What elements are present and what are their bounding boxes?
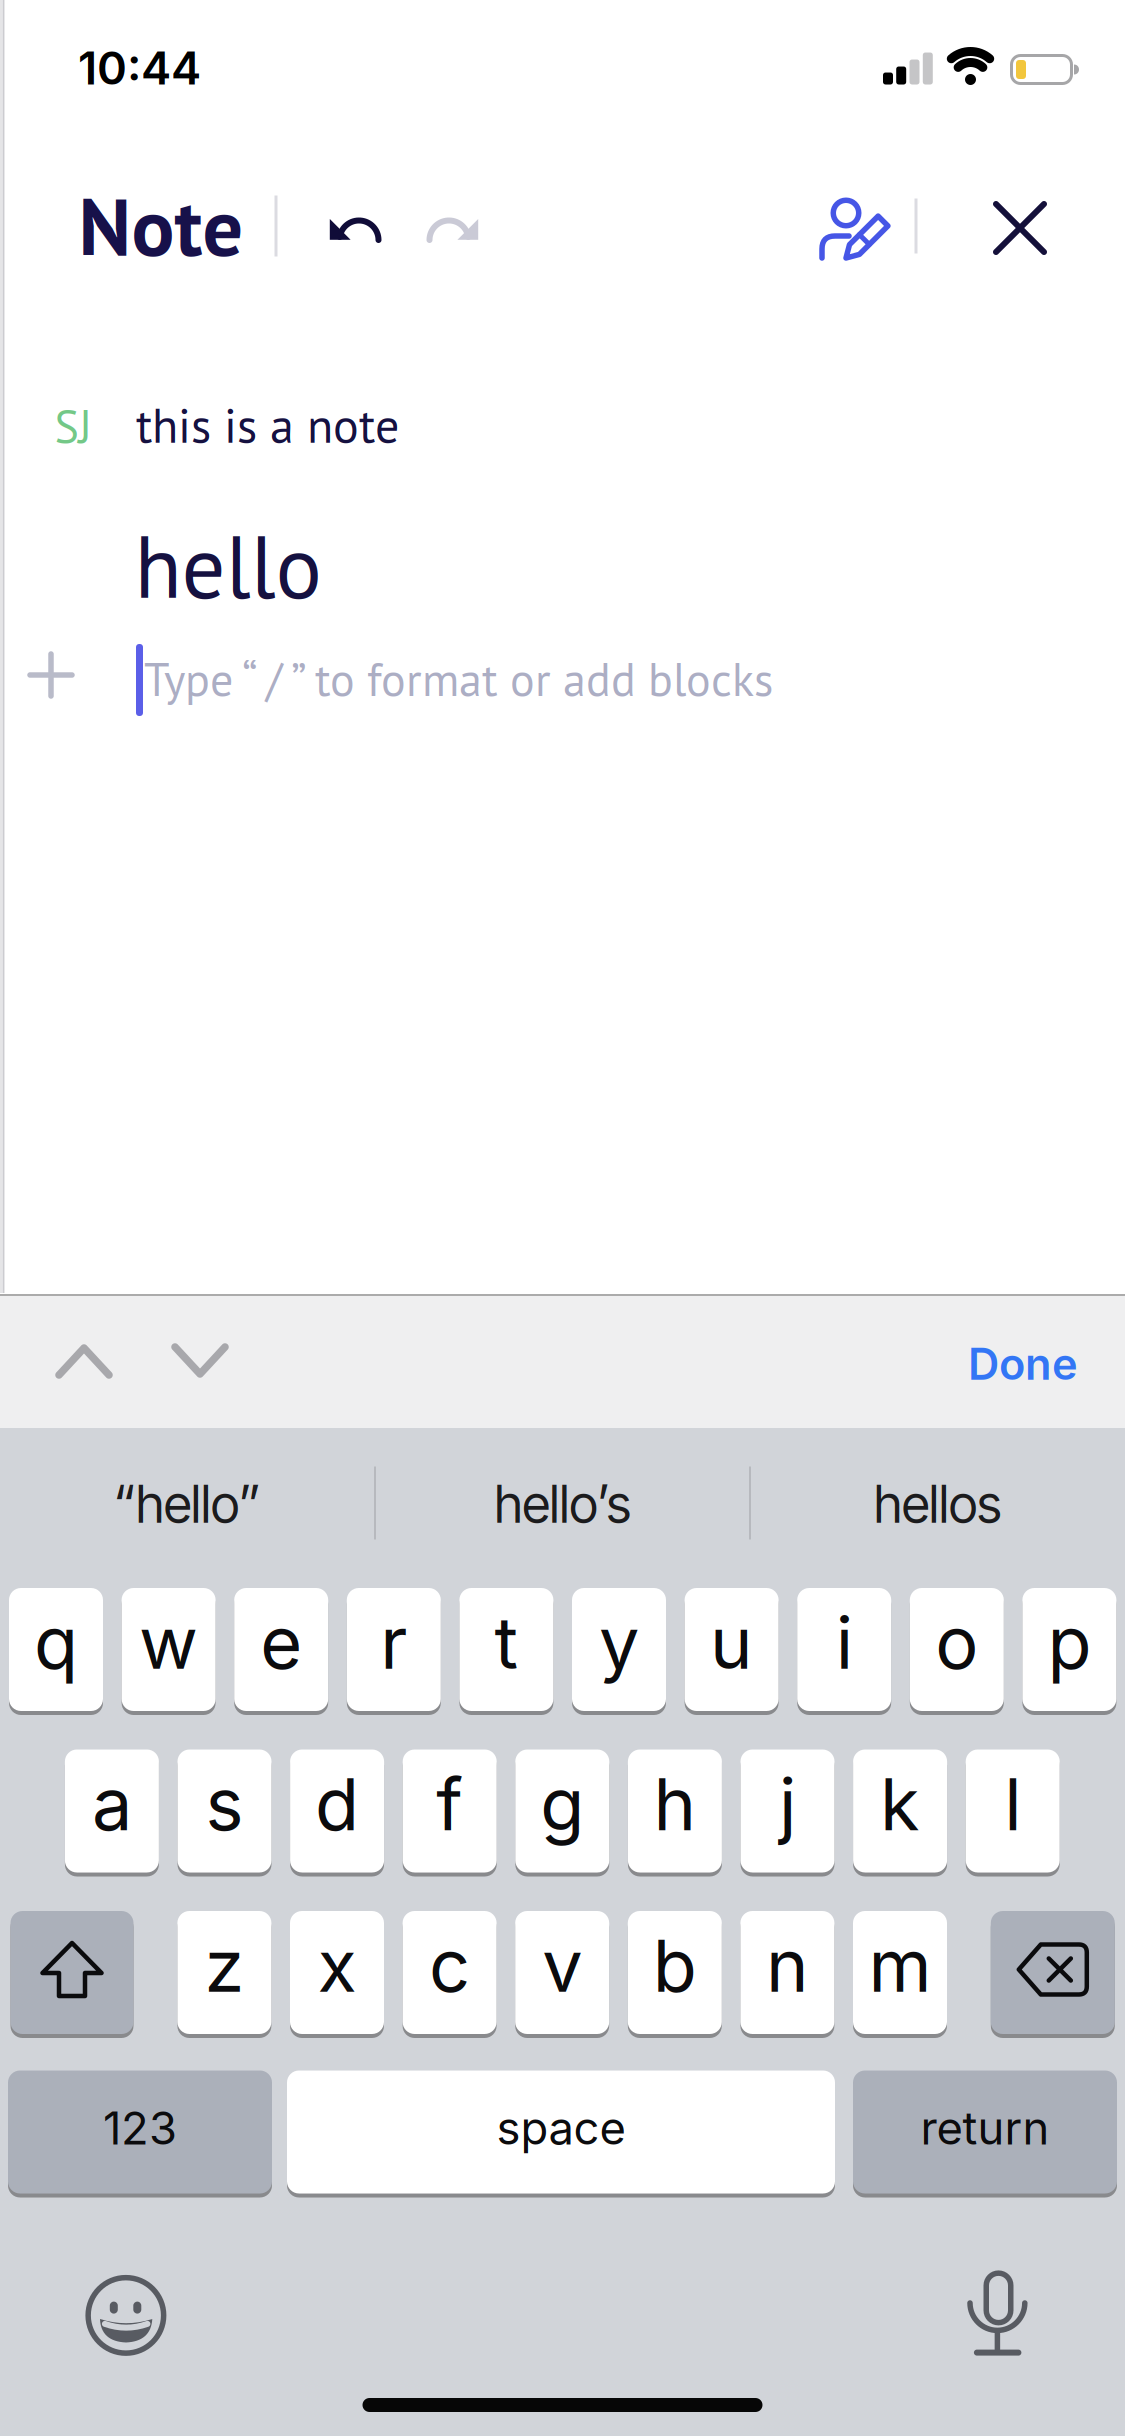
button[interactable]: w bbox=[122, 1586, 216, 1713]
staticText: k bbox=[880, 1760, 920, 1847]
button[interactable]: return bbox=[853, 2068, 1117, 2195]
staticText: n bbox=[766, 1922, 809, 2009]
button[interactable]: Emoji bbox=[85, 2274, 167, 2356]
staticText: Note bbox=[78, 174, 243, 278]
button[interactable]: s bbox=[177, 1747, 271, 1874]
staticText: b bbox=[653, 1922, 697, 2009]
button[interactable]: a bbox=[65, 1747, 159, 1874]
staticText: s bbox=[205, 1760, 243, 1847]
staticText: hello bbox=[134, 510, 321, 622]
staticText: this is a note bbox=[136, 394, 399, 456]
staticText: z bbox=[204, 1922, 244, 2009]
staticText: t bbox=[494, 1599, 518, 1686]
staticText: d bbox=[315, 1760, 359, 1847]
staticText: r bbox=[380, 1599, 407, 1686]
button[interactable]: j bbox=[740, 1747, 834, 1874]
button[interactable]: Add block bbox=[30, 654, 72, 696]
staticText: hello’s bbox=[494, 1473, 630, 1535]
button[interactable]: k bbox=[853, 1747, 947, 1874]
staticText: q bbox=[34, 1599, 78, 1686]
button[interactable]: r bbox=[347, 1586, 441, 1713]
button[interactable]: o bbox=[910, 1586, 1004, 1713]
button[interactable]: e bbox=[234, 1586, 328, 1713]
button[interactable]: u bbox=[685, 1586, 779, 1713]
button[interactable]: Previous field bbox=[55, 1342, 113, 1380]
staticText: hellos bbox=[874, 1473, 1001, 1535]
button[interactable]: l bbox=[966, 1747, 1060, 1874]
button[interactable]: m bbox=[853, 1909, 947, 2036]
button[interactable]: t bbox=[459, 1586, 553, 1713]
staticText: e bbox=[260, 1599, 302, 1686]
staticText: “hello” bbox=[114, 1473, 261, 1535]
staticText: m bbox=[868, 1922, 931, 2009]
button[interactable]: g bbox=[515, 1747, 609, 1874]
button[interactable]: hellos bbox=[757, 1444, 1117, 1564]
staticText: 123 bbox=[103, 2101, 177, 2155]
button[interactable]: Next field bbox=[171, 1342, 229, 1380]
staticText: i bbox=[836, 1599, 853, 1686]
button[interactable]: Share note bbox=[819, 197, 891, 265]
button[interactable]: p bbox=[1022, 1586, 1116, 1713]
button[interactable]: c bbox=[403, 1909, 497, 2036]
button[interactable]: d bbox=[290, 1747, 384, 1874]
staticText: a bbox=[92, 1760, 132, 1847]
staticText: f bbox=[436, 1760, 463, 1847]
button[interactable]: 123 bbox=[8, 2068, 272, 2195]
button[interactable]: x bbox=[290, 1909, 384, 2036]
button[interactable]: Undo bbox=[324, 210, 388, 260]
button[interactable]: Dictate bbox=[969, 2270, 1027, 2358]
button[interactable]: i bbox=[797, 1586, 891, 1713]
button[interactable]: z bbox=[177, 1909, 271, 2036]
staticText: y bbox=[599, 1599, 639, 1686]
button[interactable]: b bbox=[628, 1909, 722, 2036]
button[interactable]: Close bbox=[990, 198, 1050, 258]
staticText: u bbox=[710, 1599, 753, 1686]
button[interactable]: y bbox=[572, 1586, 666, 1713]
staticText: o bbox=[935, 1599, 978, 1686]
button[interactable]: space bbox=[287, 2068, 835, 2195]
button[interactable]: hello’s bbox=[382, 1444, 742, 1564]
staticText: j bbox=[779, 1760, 796, 1847]
button[interactable]: h bbox=[628, 1747, 722, 1874]
staticText: h bbox=[653, 1760, 696, 1847]
button[interactable]: f bbox=[403, 1747, 497, 1874]
button[interactable]: Shift bbox=[10, 1909, 133, 2036]
button[interactable]: “hello” bbox=[7, 1444, 367, 1564]
staticText: v bbox=[542, 1922, 582, 2009]
button[interactable]: Redo bbox=[420, 210, 484, 260]
button[interactable]: q bbox=[9, 1586, 103, 1713]
staticText: w bbox=[139, 1599, 198, 1686]
staticText: 10:44 bbox=[78, 41, 201, 95]
staticText: x bbox=[317, 1922, 356, 2009]
staticText: p bbox=[1047, 1599, 1091, 1686]
button[interactable]: v bbox=[515, 1909, 609, 2036]
staticText: g bbox=[540, 1760, 584, 1847]
button[interactable]: Delete bbox=[991, 1909, 1115, 2036]
button[interactable]: n bbox=[740, 1909, 834, 2036]
staticText: c bbox=[429, 1922, 470, 2009]
staticText: l bbox=[1004, 1760, 1021, 1847]
staticText: Done bbox=[968, 1338, 1078, 1390]
staticText: SJ bbox=[54, 396, 91, 456]
button[interactable]: Done bbox=[858, 1314, 1078, 1414]
staticText: return bbox=[920, 2101, 1049, 2155]
staticText: space bbox=[496, 2101, 625, 2155]
staticText: Type “ / ” to format or add blocks bbox=[144, 649, 773, 709]
